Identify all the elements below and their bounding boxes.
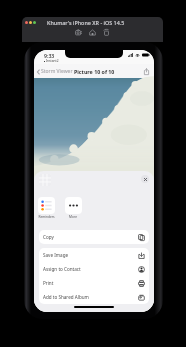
staticText: Save Image bbox=[43, 252, 69, 258]
staticText: Picture 10 of 10 bbox=[74, 68, 115, 75]
staticText: Print bbox=[43, 280, 54, 286]
staticText: Assign to Contact bbox=[43, 266, 81, 272]
staticText: Instant2 bbox=[46, 59, 59, 63]
button[interactable]: Print bbox=[39, 276, 149, 290]
button[interactable]: Reminders bbox=[37, 197, 55, 219]
button[interactable]: Copy bbox=[39, 230, 149, 244]
staticText: 9:33 bbox=[44, 52, 55, 59]
button[interactable]: Save Image bbox=[39, 248, 149, 262]
button[interactable]: Add to Shared Album bbox=[39, 290, 149, 304]
button[interactable]: Storm Viewer bbox=[36, 66, 74, 77]
button[interactable]: More bbox=[64, 197, 82, 219]
button[interactable]: Rotate bbox=[102, 28, 111, 37]
staticText: Storm Viewer bbox=[41, 68, 73, 75]
button[interactable]: Screenshot bbox=[74, 28, 83, 37]
button[interactable]: Close bbox=[141, 175, 149, 183]
staticText: Copy bbox=[43, 234, 54, 240]
button[interactable]: Home bbox=[88, 28, 97, 37]
button[interactable]: Assign to Contact bbox=[39, 262, 149, 276]
staticText: More bbox=[69, 215, 77, 219]
staticText: Reminders bbox=[38, 215, 55, 219]
staticText: Add to Shared Album bbox=[43, 294, 89, 300]
staticText: Khumar's iPhone XR - iOS 14.5 bbox=[47, 19, 125, 26]
button[interactable]: Share bbox=[142, 67, 151, 76]
